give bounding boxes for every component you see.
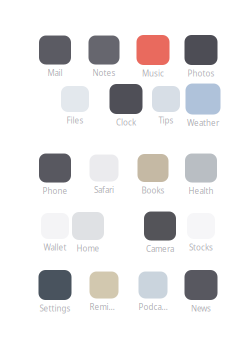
staticText: Phone xyxy=(42,185,67,196)
staticText: Podcasts xyxy=(138,301,167,312)
button[interactable]: Music xyxy=(136,35,169,79)
staticText: Mail xyxy=(47,67,62,78)
staticText: Music xyxy=(142,68,164,79)
staticText: News xyxy=(191,303,211,314)
button[interactable]: Camera xyxy=(144,211,176,254)
button[interactable]: Podcasts xyxy=(138,271,167,312)
button[interactable]: Notes xyxy=(88,35,119,78)
staticText: Health xyxy=(188,185,213,196)
button[interactable]: Reminders xyxy=(89,271,118,312)
button[interactable]: News xyxy=(184,270,217,314)
button[interactable]: Weather xyxy=(185,83,220,128)
staticText: Stocks xyxy=(189,242,213,253)
button[interactable]: Clock xyxy=(109,84,142,128)
button[interactable]: Stocks xyxy=(187,213,215,253)
button[interactable]: Health xyxy=(185,153,217,196)
staticText: Settings xyxy=(39,303,70,314)
staticText: Books xyxy=(141,185,164,196)
staticText: Reminders xyxy=(89,301,118,312)
staticText: Home xyxy=(76,243,99,254)
staticText: Files xyxy=(66,115,83,126)
staticText: Wallet xyxy=(43,242,66,253)
staticText: Tips xyxy=(158,115,173,126)
staticText: Notes xyxy=(92,67,115,78)
staticText: Photos xyxy=(187,68,214,79)
button[interactable]: Phone xyxy=(39,153,71,196)
button[interactable]: Books xyxy=(137,154,168,196)
button[interactable]: Photos xyxy=(184,35,217,79)
button[interactable]: Tips xyxy=(152,86,180,126)
button[interactable]: Safari xyxy=(89,154,118,195)
staticText: Clock xyxy=(116,117,136,128)
staticText: Weather xyxy=(187,117,219,128)
button[interactable]: Files xyxy=(61,86,89,126)
button[interactable]: Wallet xyxy=(41,213,69,253)
button[interactable]: Home xyxy=(72,212,104,254)
button[interactable]: Settings xyxy=(38,270,71,314)
staticText: Safari xyxy=(94,184,114,195)
staticText: Camera xyxy=(146,243,174,254)
button[interactable]: Mail xyxy=(39,35,71,78)
